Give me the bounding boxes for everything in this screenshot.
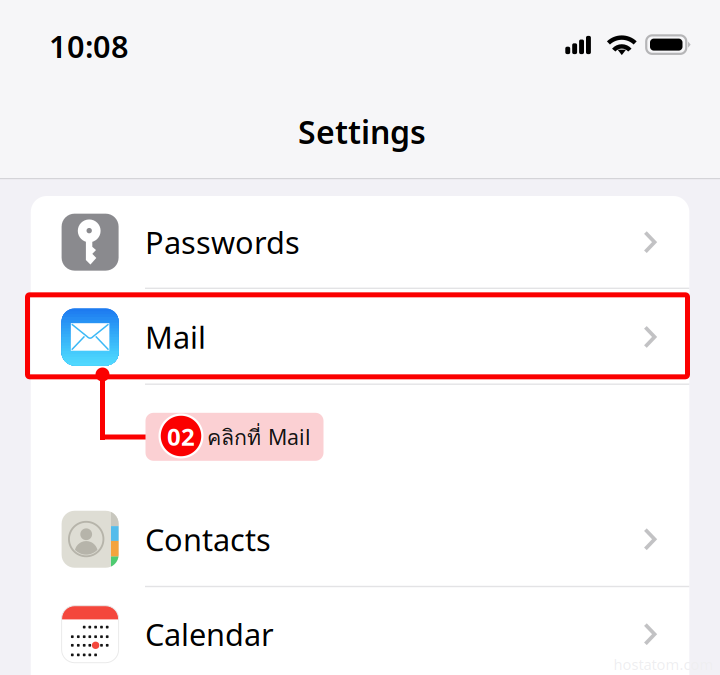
button[interactable]: Passwords	[31, 196, 689, 288]
staticText: คลิกที่ Mail	[207, 421, 311, 454]
staticText: 02	[167, 421, 195, 452]
staticText: Mail	[145, 317, 206, 357]
staticText: 10:08	[49, 26, 129, 66]
button[interactable]: Calendar	[31, 588, 689, 675]
staticText: Contacts	[145, 519, 271, 560]
button[interactable]: Mail	[31, 290, 689, 384]
staticText: Passwords	[145, 222, 300, 262]
button[interactable]: Contacts	[31, 492, 689, 586]
staticText: Settings	[298, 110, 426, 153]
staticText: Calendar	[145, 614, 274, 654]
staticText: hostatom.com	[614, 654, 714, 674]
